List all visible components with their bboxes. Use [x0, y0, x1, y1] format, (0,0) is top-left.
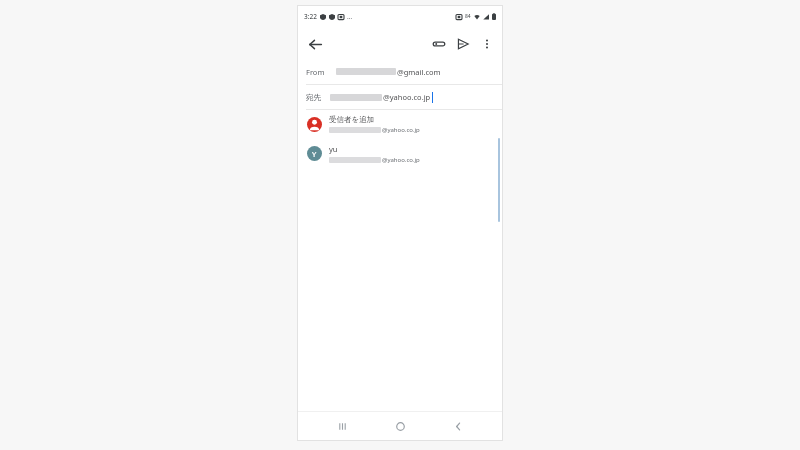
staticText: 84 [465, 13, 471, 20]
button[interactable]: Recent apps [329, 413, 355, 439]
button[interactable]: Back [303, 32, 327, 56]
button[interactable]: More options [475, 32, 499, 56]
staticText: @gmail.com [397, 67, 441, 77]
staticText: yu [329, 144, 338, 154]
button[interactable]: Back [445, 413, 471, 439]
staticText: @yahoo.co.jp [383, 92, 431, 102]
button[interactable]: 受信者を追加 [297, 110, 503, 139]
staticText: Y [312, 149, 317, 159]
button[interactable]: Home [387, 413, 413, 439]
staticText: @yahoo.co.jp [382, 156, 420, 164]
button[interactable]: Send [451, 32, 475, 56]
staticText: @yahoo.co.jp [382, 126, 420, 134]
staticText: 3:22 [304, 12, 317, 21]
staticText: From [306, 67, 325, 77]
button[interactable]: Y [297, 139, 503, 168]
button[interactable]: Attach file [427, 32, 451, 56]
staticText: 受信者を追加 [329, 115, 375, 124]
button[interactable]: 宛先 [297, 85, 503, 110]
staticText: … [347, 12, 353, 21]
staticText: 宛先 [306, 93, 321, 102]
button[interactable]: From [297, 59, 503, 85]
